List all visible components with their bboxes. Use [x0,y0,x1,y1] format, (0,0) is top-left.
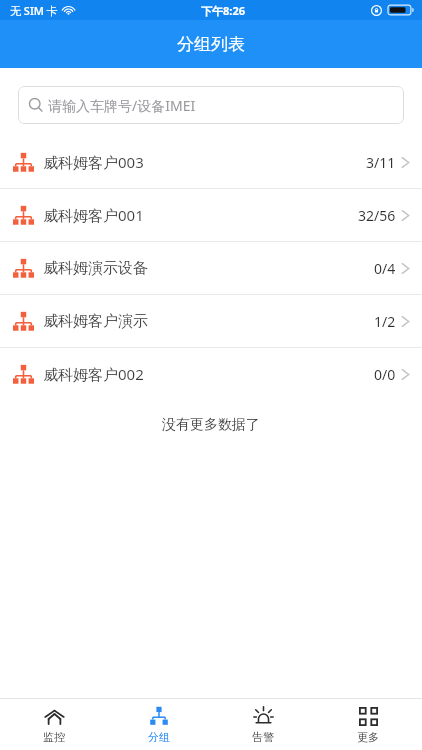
staticText: 分组列表 [177,34,245,55]
button[interactable]: 请输入车牌号/设备IMEI [18,86,404,124]
button[interactable]: 威科姆客户002 [0,348,422,400]
staticText: 威科姆演示设备 [43,259,148,278]
button[interactable]: 威科姆演示设备 [0,242,422,294]
staticText: 3/11 [366,153,396,172]
staticText: 告警 [252,730,274,744]
staticText: 没有更多数据了 [0,416,422,434]
staticText: 0/0 [374,365,396,384]
staticText: 0/4 [374,259,396,278]
staticText: 无 SIM 卡 [10,3,58,18]
button[interactable]: 威科姆客户003 [0,136,422,188]
staticText: 监控 [43,730,65,744]
button[interactable]: 威科姆客户001 [0,189,422,241]
other: 告警 [253,706,274,727]
staticText: 威科姆客户002 [43,364,144,384]
staticText: 威科姆客户001 [43,205,144,225]
staticText: 更多 [357,730,379,744]
button[interactable]: 威科姆客户演示 [0,295,422,347]
other: 监控 [44,706,65,727]
button[interactable]: 监控 [4,699,104,750]
button[interactable]: 更多 [318,699,418,750]
staticText: 威科姆客户003 [43,152,144,172]
button[interactable]: 分组 [109,699,209,750]
staticText: 请输入车牌号/设备IMEI [48,96,196,115]
staticText: 威科姆客户演示 [43,312,148,331]
other: 更多 [359,707,378,726]
staticText: 32/56 [358,206,396,225]
staticText: 1/2 [374,312,396,331]
staticText: 下午8:26 [201,3,245,18]
button[interactable]: 告警 [213,699,313,750]
staticText: 分组 [148,730,170,744]
